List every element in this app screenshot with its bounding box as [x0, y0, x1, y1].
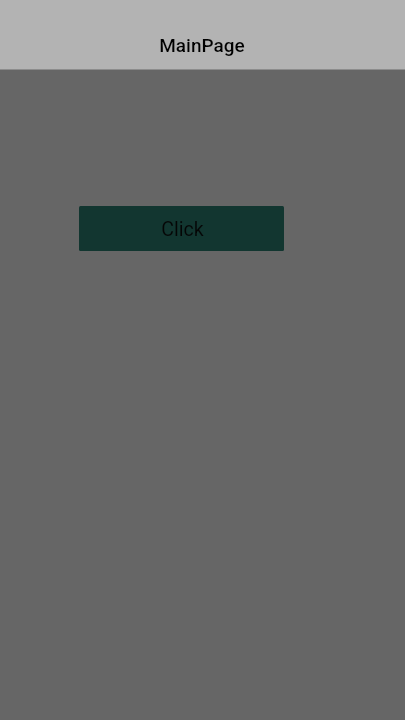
staticText: MainPage	[159, 34, 245, 56]
staticText: Click	[161, 218, 204, 241]
button[interactable]: Click	[79, 206, 284, 251]
